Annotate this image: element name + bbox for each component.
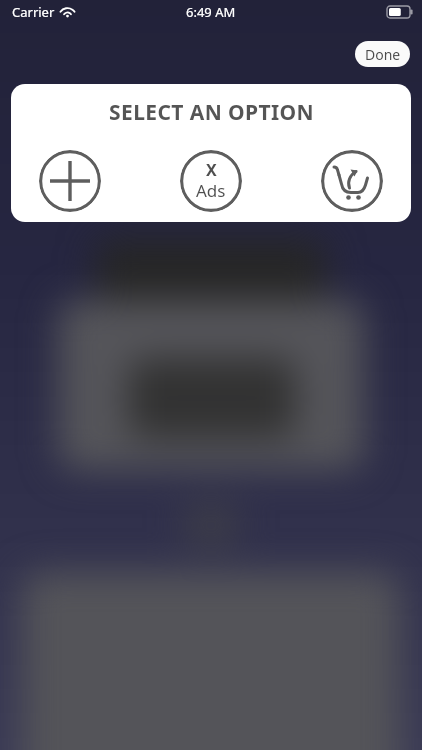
staticText: Ads	[196, 179, 226, 202]
button[interactable]: Done	[355, 41, 410, 67]
staticText: X	[206, 159, 217, 181]
staticText: SELECT AN OPTION	[109, 98, 314, 127]
staticText: Carrier	[12, 3, 55, 21]
staticText: Done	[365, 45, 401, 64]
button[interactable]: No Ads	[180, 150, 242, 212]
staticText: 6:49 AM	[186, 3, 236, 21]
button[interactable]: Restore purchases	[321, 150, 383, 212]
button[interactable]: Add	[39, 150, 101, 212]
